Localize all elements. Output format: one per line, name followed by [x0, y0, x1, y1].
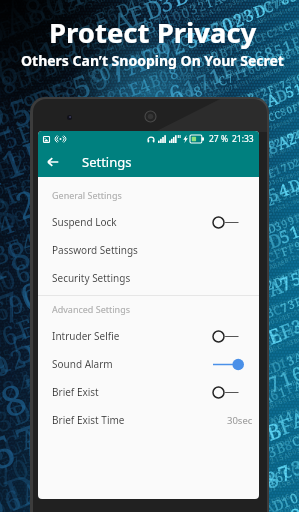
staticText: Security Settings [52, 271, 131, 285]
button[interactable]: Security Settings [38, 264, 259, 292]
button[interactable]: Intruder Selfie [38, 322, 259, 350]
staticText: Protect Privacy [49, 14, 257, 51]
staticText: General Settings [52, 189, 122, 201]
staticText: Advanced Settings [52, 303, 130, 315]
staticText: Others Can’t Snooping On Your Secret [21, 51, 284, 70]
staticText: 30sec [227, 414, 253, 427]
staticText: Brief Exist Time [52, 413, 125, 427]
button[interactable]: Password Settings [38, 236, 259, 264]
button[interactable]: Suspend Lock [38, 208, 259, 236]
staticText: Sound Alarm [52, 357, 113, 371]
staticText: 27 % [209, 133, 228, 145]
staticText: Settings [82, 153, 132, 171]
staticText: Password Settings [52, 243, 138, 257]
button[interactable]: Sound Alarm [38, 350, 259, 378]
staticText: Intruder Selfie [52, 329, 120, 343]
button[interactable]: Back [38, 147, 68, 177]
staticText: 21:33 [232, 133, 254, 145]
button[interactable]: Brief Exist [38, 378, 259, 406]
staticText: Brief Exist [52, 385, 99, 399]
button[interactable]: Brief Exist Time [38, 406, 259, 434]
staticText: Suspend Lock [52, 215, 117, 229]
